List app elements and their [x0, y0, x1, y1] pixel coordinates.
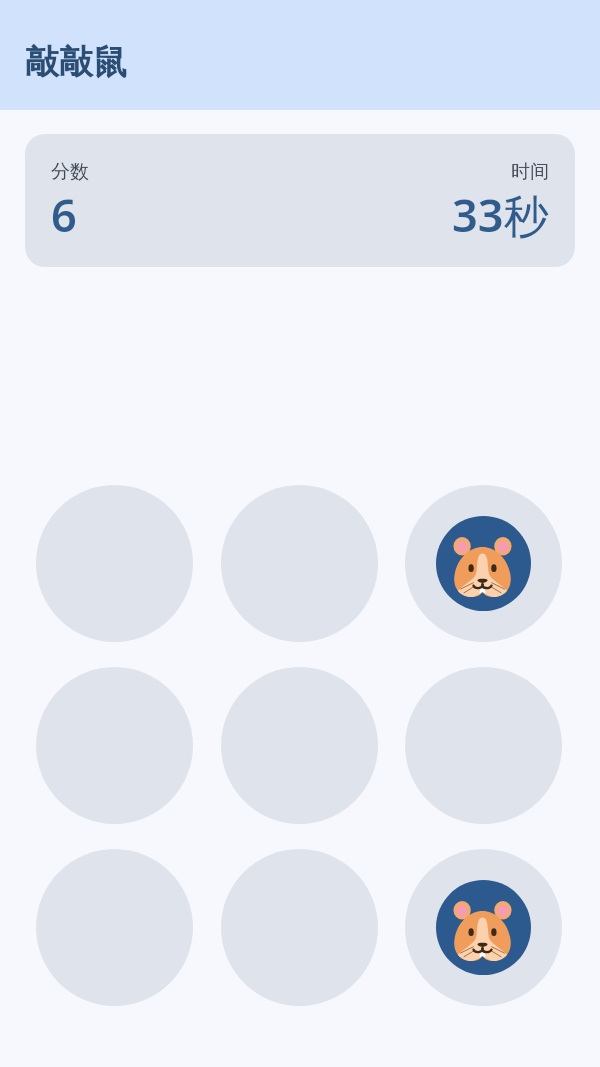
button[interactable]: Empty hole [36, 485, 193, 642]
button[interactable]: Empty hole [221, 849, 378, 1006]
staticText: 敲敲鼠 [25, 41, 127, 84]
button[interactable]: Empty hole [221, 667, 378, 824]
staticText: 时间 [511, 160, 549, 184]
staticText: 33秒 [452, 184, 549, 245]
staticText: 分数 [51, 160, 89, 184]
button[interactable]: Empty hole [405, 667, 562, 824]
button[interactable]: Hit mole [405, 849, 562, 1006]
button[interactable]: Empty hole [36, 667, 193, 824]
button[interactable]: Hit mole [405, 485, 562, 642]
staticText: 6 [51, 184, 77, 245]
button[interactable]: Empty hole [221, 485, 378, 642]
button[interactable]: 分数 [25, 134, 575, 267]
button[interactable]: Empty hole [36, 849, 193, 1006]
